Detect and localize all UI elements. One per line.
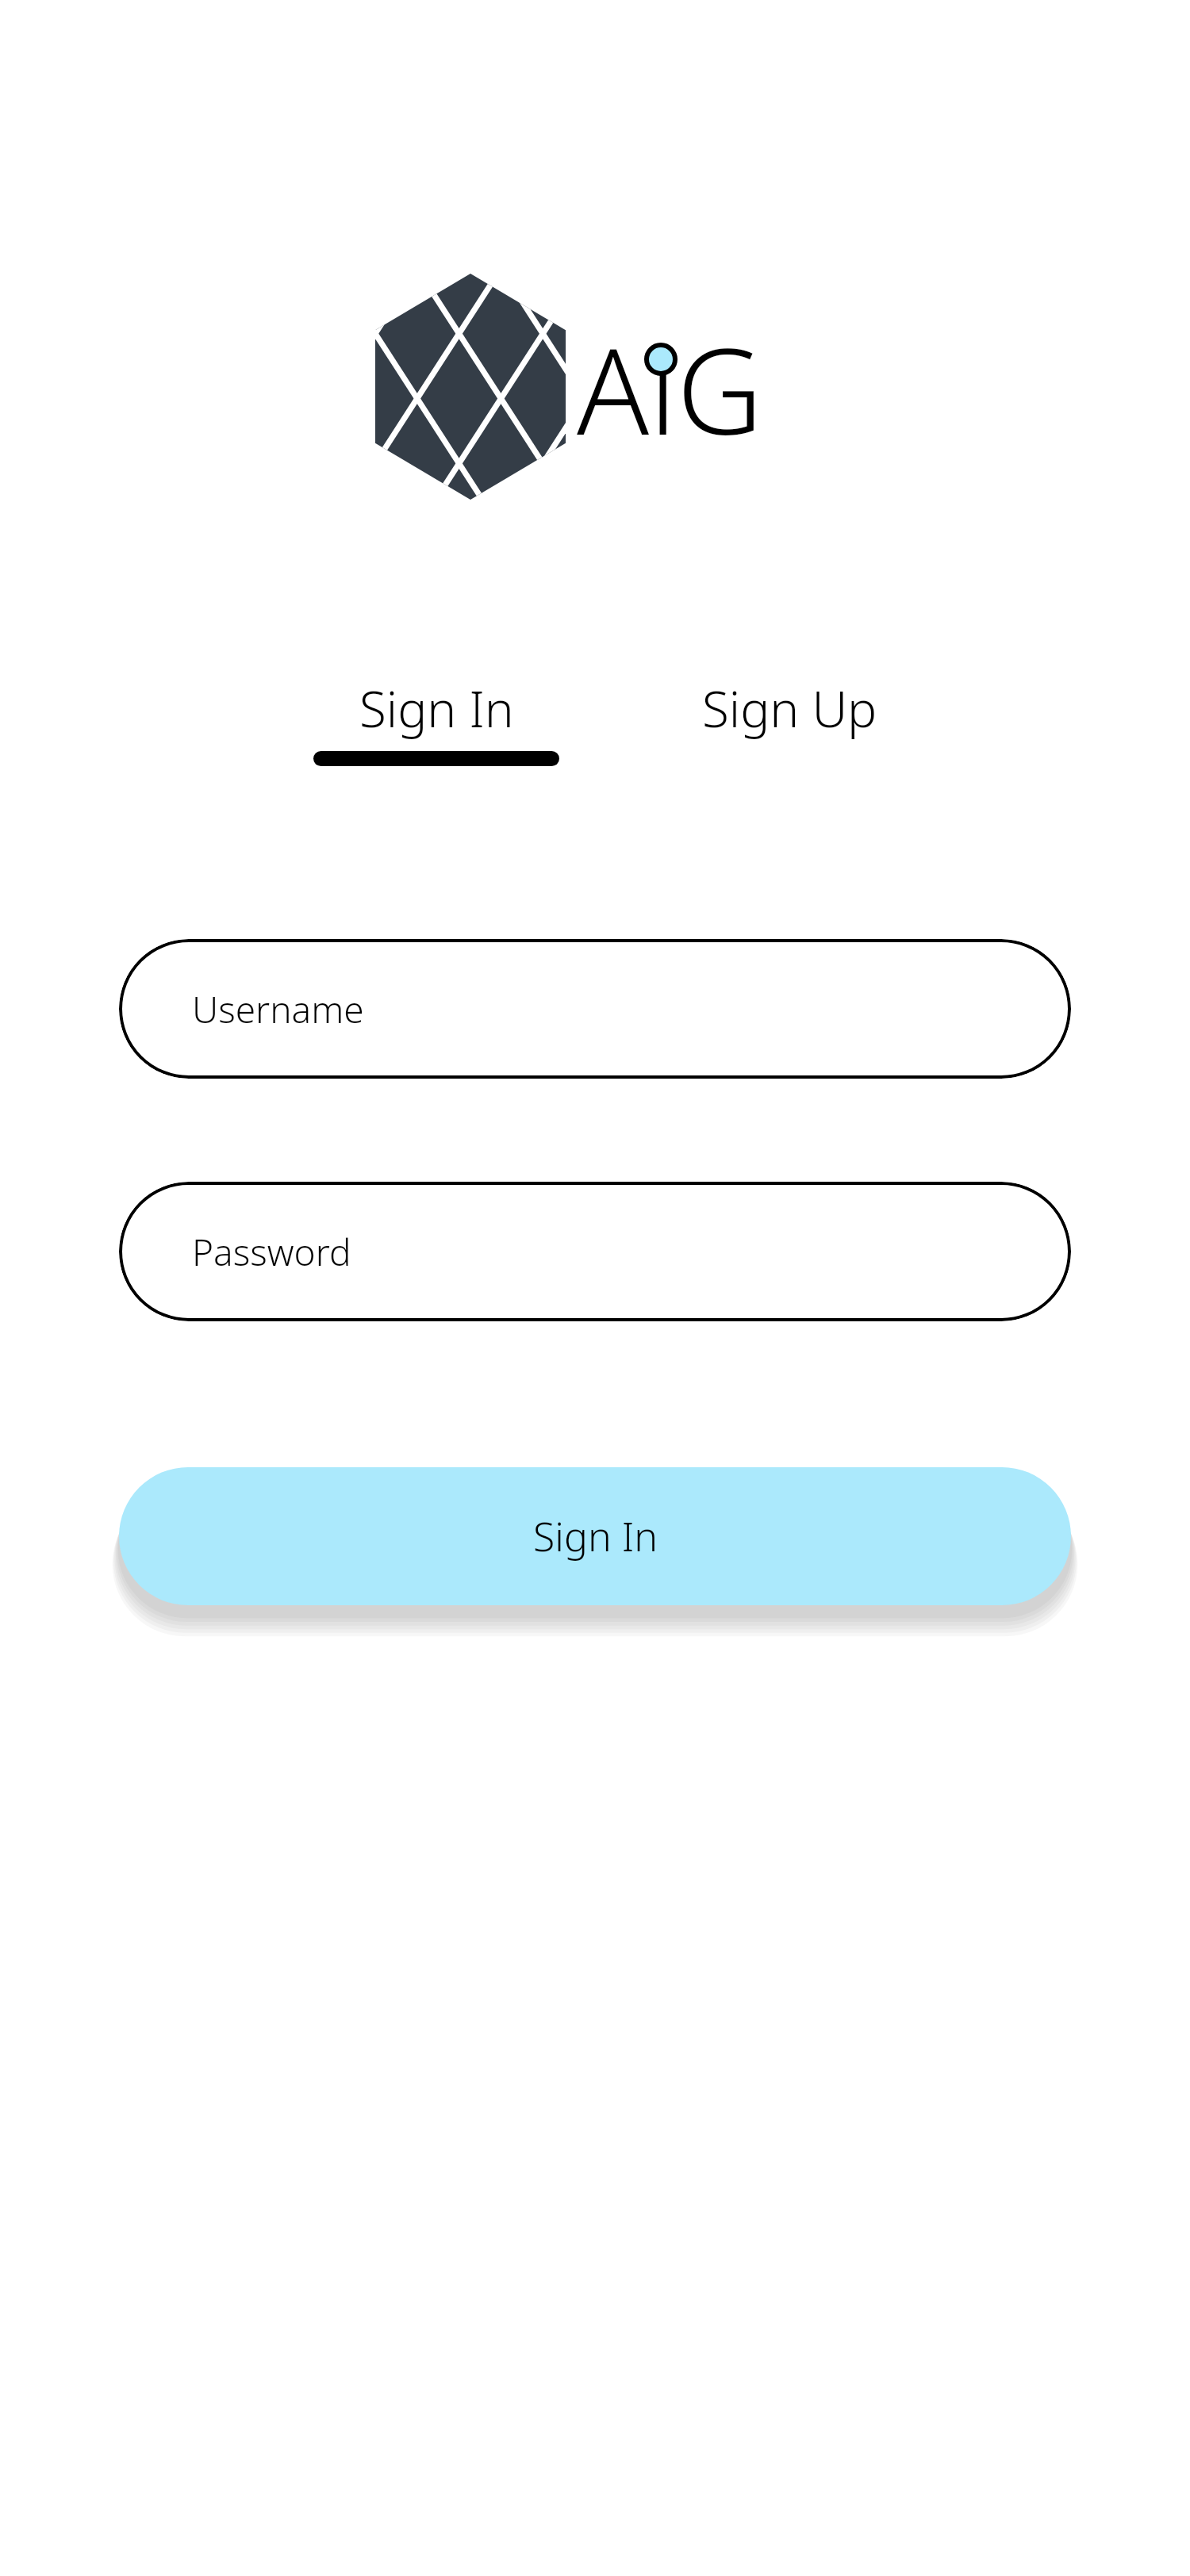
staticText: AiGHT [577, 308, 815, 466]
button[interactable]: Sign Up [694, 670, 885, 771]
button[interactable]: Password [119, 1182, 1071, 1321]
button[interactable]: Sign In [305, 670, 567, 771]
button[interactable]: Sign In [119, 1467, 1071, 1605]
staticText: Username [192, 984, 364, 1034]
staticText: Sign Up [702, 675, 877, 742]
staticText: Sign In [359, 675, 514, 742]
button[interactable]: Username [119, 939, 1071, 1079]
staticText: Password [192, 1227, 351, 1277]
staticText: Sign In [533, 1509, 658, 1563]
